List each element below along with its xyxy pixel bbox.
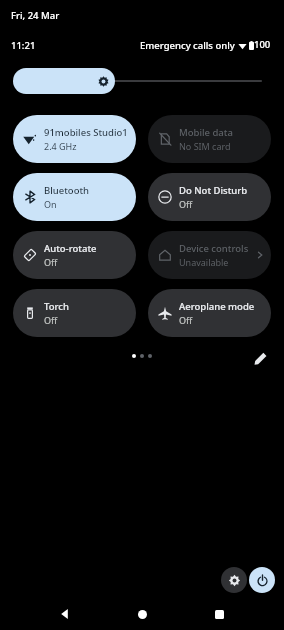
button[interactable]: Aeroplane mode xyxy=(148,289,271,337)
button[interactable]: Bluetooth xyxy=(13,173,136,221)
button[interactable]: Brightness xyxy=(13,68,271,94)
button[interactable]: Torch xyxy=(13,289,136,337)
staticText: Unavailable xyxy=(179,256,229,268)
staticText: 11:21 xyxy=(11,39,36,52)
button[interactable]: 91mobiles Studio1 xyxy=(13,115,136,163)
staticText: Torch xyxy=(44,300,69,313)
button[interactable]: Auto-rotate xyxy=(13,231,136,279)
button[interactable]: Edit tiles xyxy=(250,348,270,368)
staticText: Off xyxy=(44,314,58,326)
staticText: Off xyxy=(179,314,193,326)
button[interactable]: Recent apps xyxy=(209,598,229,630)
staticText: On xyxy=(44,198,57,210)
staticText: Aeroplane mode xyxy=(179,300,255,313)
staticText: 2.4 GHz xyxy=(44,140,77,152)
button[interactable]: Mobile data xyxy=(148,115,271,163)
staticText: Emergency calls only xyxy=(140,39,235,52)
button[interactable]: Do Not Disturb xyxy=(148,173,271,221)
staticText: Mobile data xyxy=(179,126,233,139)
button[interactable]: Settings xyxy=(221,567,247,593)
staticText: No SIM card xyxy=(179,140,231,152)
staticText: Auto-rotate xyxy=(44,242,97,255)
button[interactable]: Power xyxy=(249,567,275,593)
staticText: Do Not Disturb xyxy=(179,184,248,197)
staticText: Fri, 24 Mar xyxy=(11,9,60,22)
staticText: 91mobiles Studio1 xyxy=(44,126,128,139)
staticText: Bluetooth xyxy=(44,184,90,197)
staticText: Device controls xyxy=(179,242,249,255)
staticText: Off xyxy=(179,198,193,210)
staticText: 100% xyxy=(254,38,274,52)
button[interactable]: Device controls xyxy=(148,231,271,279)
button[interactable]: Back xyxy=(55,598,75,630)
staticText: Off xyxy=(44,256,58,268)
button[interactable]: Home xyxy=(132,598,152,630)
